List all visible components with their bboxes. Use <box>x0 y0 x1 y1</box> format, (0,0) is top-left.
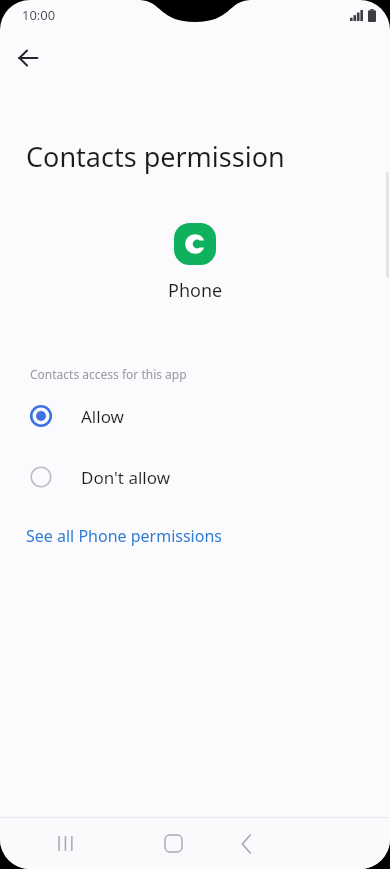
staticText: See all Phone permissions <box>26 525 222 547</box>
staticText: 10:00 <box>22 6 56 24</box>
staticText: Contacts access for this app <box>30 366 187 382</box>
button[interactable]: See all Phone permissions <box>0 517 390 555</box>
button[interactable]: Don't allow <box>0 457 390 497</box>
button[interactable]: Back <box>0 30 56 86</box>
staticText: Contacts permission <box>26 138 285 175</box>
button[interactable]: Home <box>130 818 217 869</box>
staticText: Don't allow <box>81 466 171 489</box>
staticText: Allow <box>81 405 124 428</box>
button[interactable]: Allow <box>0 396 390 436</box>
button[interactable]: Back <box>217 818 275 869</box>
button[interactable]: Recents <box>0 818 130 869</box>
staticText: Phone <box>168 278 223 303</box>
